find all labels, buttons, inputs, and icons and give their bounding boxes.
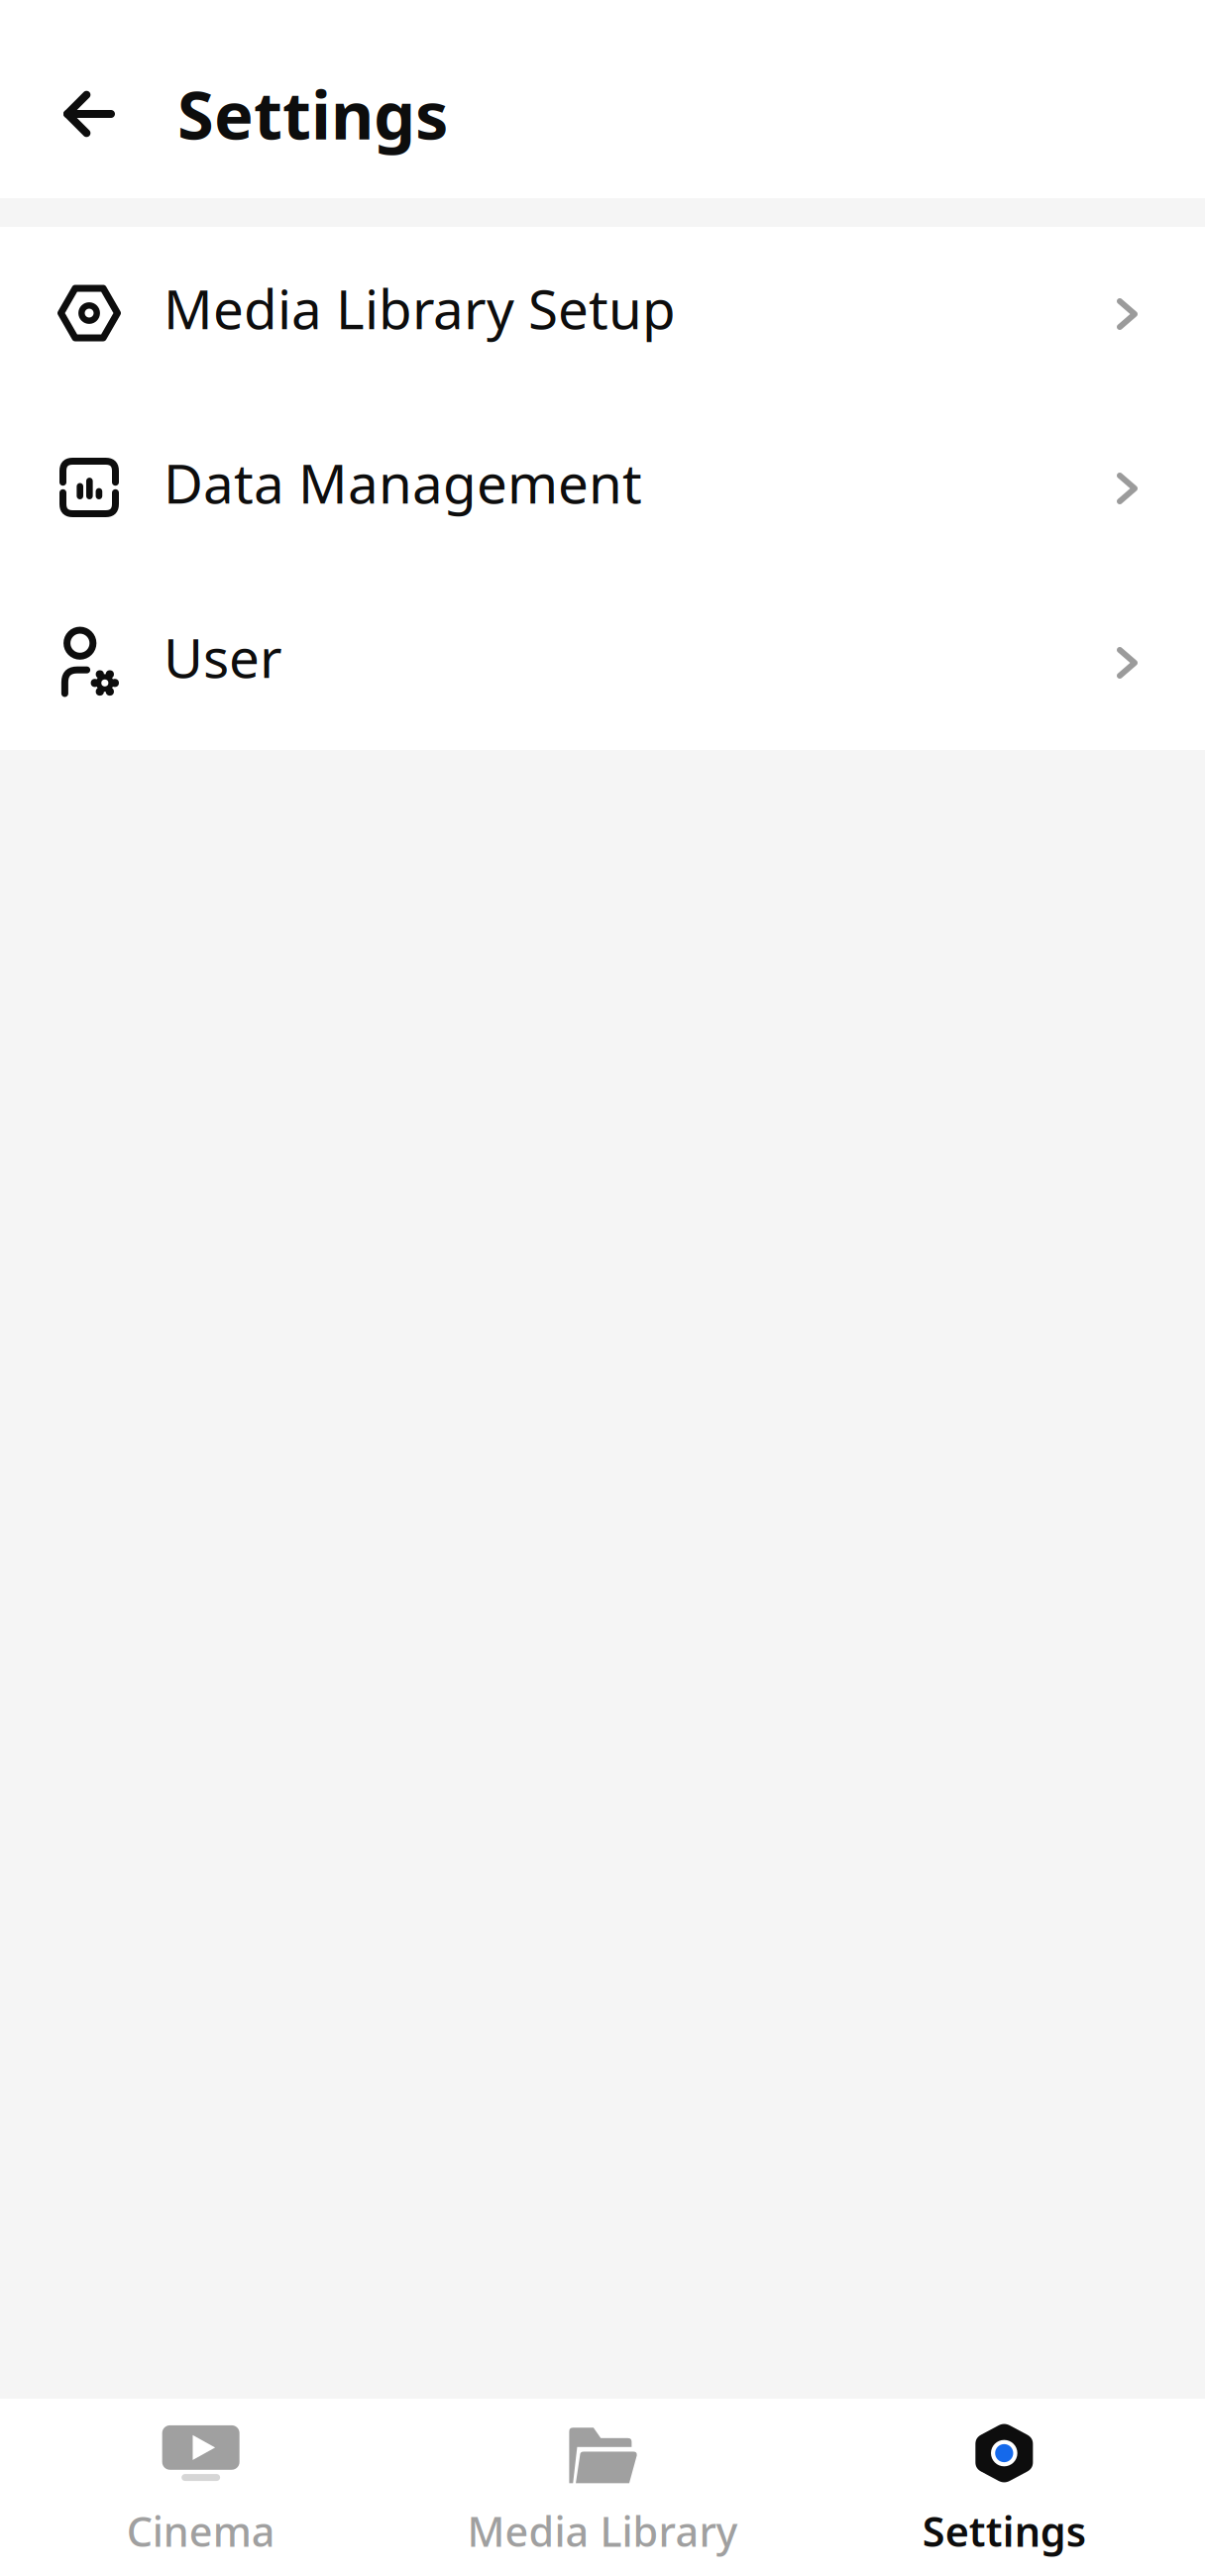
- button[interactable]: Data Management: [0, 401, 1205, 576]
- button[interactable]: Settings: [803, 2399, 1205, 2576]
- button[interactable]: Cinema: [0, 2399, 402, 2576]
- staticText: Media Library Setup: [164, 272, 676, 344]
- staticText: User: [164, 621, 282, 693]
- button[interactable]: Media Library: [402, 2399, 803, 2576]
- staticText: Data Management: [164, 447, 642, 518]
- button[interactable]: Media Library Setup: [0, 227, 1205, 401]
- button[interactable]: Back: [38, 62, 141, 165]
- staticText: Cinema: [127, 2504, 275, 2558]
- staticText: Media Library: [467, 2504, 738, 2558]
- staticText: Settings: [922, 2504, 1086, 2558]
- button[interactable]: User: [0, 576, 1205, 750]
- staticText: Settings: [177, 70, 448, 158]
